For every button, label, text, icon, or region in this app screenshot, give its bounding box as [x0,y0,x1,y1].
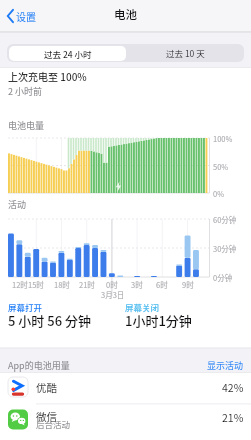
staticText: 50% [213,161,229,172]
staticText: 60分钟 [213,214,237,225]
staticText: App的电池用量 [8,359,70,372]
staticText: 6时 [156,279,168,290]
staticText: 优酷 [36,380,57,395]
staticText: 活动 [8,198,27,211]
staticText: 15时 [28,279,44,290]
button[interactable] [0,372,251,404]
staticText: 后台活动 [36,418,71,430]
staticText: 100% [213,133,233,144]
button[interactable]: 过去 10 天 [126,44,244,62]
staticText: 上次充电至 100% [8,69,87,83]
staticText: 0时 [106,279,118,290]
button[interactable]: 过去 24 小时 [9,46,126,61]
button[interactable]: 设置 [5,6,36,26]
staticText: 21时 [79,279,95,290]
staticText: 显示活动 [207,359,244,372]
staticText: 过去 10 天 [166,47,205,59]
staticText: 屏幕关闭 [125,301,160,313]
staticText: 5 小时 56 分钟 [8,311,92,330]
staticText: 0% [213,188,225,199]
staticText: 3月3日 [101,289,125,300]
staticText: 3时 [131,279,143,290]
staticText: 18时 [54,279,70,290]
staticText: 电池电量 [8,119,45,132]
staticText: 21% [222,410,244,425]
staticText: 0分钟 [213,272,233,283]
staticText: 9时 [182,279,194,290]
staticText: 电池 [114,6,137,23]
staticText: 12时 [12,279,28,290]
staticText: 屏幕打开 [8,301,43,313]
staticText: 42% [222,380,244,395]
staticText: 30分钟 [213,243,237,254]
staticText: 1小时1分钟 [125,311,192,330]
button[interactable]: 显示活动 [160,359,244,372]
staticText: 过去 24 小时 [44,48,92,60]
staticText: 2 小时前 [8,85,43,98]
staticText: 设置 [16,9,36,23]
staticText: 微信 [36,409,57,424]
button[interactable] [0,404,251,440]
